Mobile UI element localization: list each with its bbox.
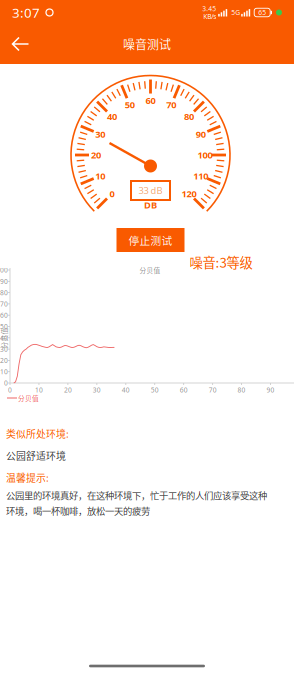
staticText: 90: [267, 386, 275, 394]
staticText: 80: [184, 110, 194, 123]
staticText: 噪音测试: [123, 35, 171, 53]
staticText: 70: [209, 386, 217, 394]
staticText: 50: [151, 386, 159, 394]
staticText: 110: [193, 170, 208, 182]
staticText: 80: [238, 386, 246, 394]
staticText: 40: [107, 110, 117, 123]
staticText: 温馨提示:: [6, 470, 49, 485]
staticText: 0: [109, 187, 114, 200]
staticText: 40: [122, 386, 130, 394]
staticText: 环境，喝一杯咖啡，放松一天的疲劳: [6, 504, 150, 517]
staticText: 60: [180, 386, 188, 394]
staticText: 50: [125, 98, 135, 111]
staticText: 20: [0, 356, 8, 365]
staticText: 3.45: [202, 4, 216, 13]
staticText: 70: [0, 299, 8, 308]
staticText: 100: [197, 149, 212, 161]
staticText: DB: [144, 199, 157, 211]
staticText: 20: [64, 386, 72, 394]
staticText: 分贝值: [139, 265, 160, 275]
staticText: 120: [181, 187, 196, 200]
staticText: 100: [0, 266, 8, 274]
staticText: 90: [0, 277, 8, 286]
staticText: 80: [0, 288, 8, 297]
staticText: 10: [35, 386, 43, 394]
staticText: 10: [0, 367, 8, 376]
staticText: 公园里的环境真好，在这种环境下，忙于工作的人们应该享受这种: [6, 488, 267, 502]
staticText: 10: [95, 170, 105, 182]
staticText: 噪音:3等级: [189, 252, 252, 272]
staticText: 分贝值: [0, 333, 14, 343]
staticText: KB/s: [203, 12, 216, 21]
staticText: 5G: [231, 8, 240, 17]
button[interactable]: Back: [0, 24, 39, 63]
staticText: 停止测试: [128, 232, 172, 248]
staticText: 分贝值: [18, 393, 39, 403]
staticText: 65: [258, 8, 266, 17]
staticText: 40: [0, 333, 8, 342]
staticText: 50: [0, 322, 8, 331]
staticText: 类似所处环境:: [6, 426, 69, 441]
staticText: 33 dB: [138, 184, 162, 197]
staticText: 20: [91, 149, 101, 161]
staticText: 60: [0, 311, 8, 320]
staticText: 90: [196, 128, 206, 140]
button[interactable]: 停止测试: [116, 228, 184, 252]
staticText: 30: [93, 386, 101, 394]
staticText: 30: [0, 345, 8, 354]
staticText: 0: [8, 386, 12, 394]
staticText: 3:07: [12, 4, 40, 21]
staticText: 0: [4, 379, 8, 387]
staticText: 60: [145, 94, 155, 107]
staticText: 70: [166, 98, 176, 111]
staticText: 公园舒适环境: [6, 448, 66, 463]
staticText: 30: [95, 128, 105, 140]
